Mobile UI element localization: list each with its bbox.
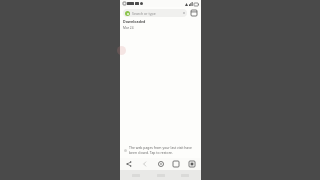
button[interactable]: Back xyxy=(139,158,151,170)
staticText: Mar 24 xyxy=(123,26,134,30)
button[interactable]: Home xyxy=(155,158,167,170)
button[interactable]: Share xyxy=(123,158,135,170)
button[interactable]: Menu xyxy=(186,158,198,170)
button[interactable]: Back xyxy=(177,170,193,180)
staticText: Downloaded xyxy=(123,19,146,24)
button[interactable]: Home xyxy=(153,170,169,180)
button[interactable]: Recents xyxy=(128,170,144,180)
button[interactable]: Bookmarks xyxy=(170,158,182,170)
button[interactable]: Tabs xyxy=(189,8,198,17)
staticText: Search or type xyxy=(132,11,156,16)
staticText: The web pages from your last visit have … xyxy=(129,145,197,155)
button[interactable]: The web pages from your last visit have … xyxy=(120,143,201,158)
button[interactable]: Search or type xyxy=(123,9,187,17)
